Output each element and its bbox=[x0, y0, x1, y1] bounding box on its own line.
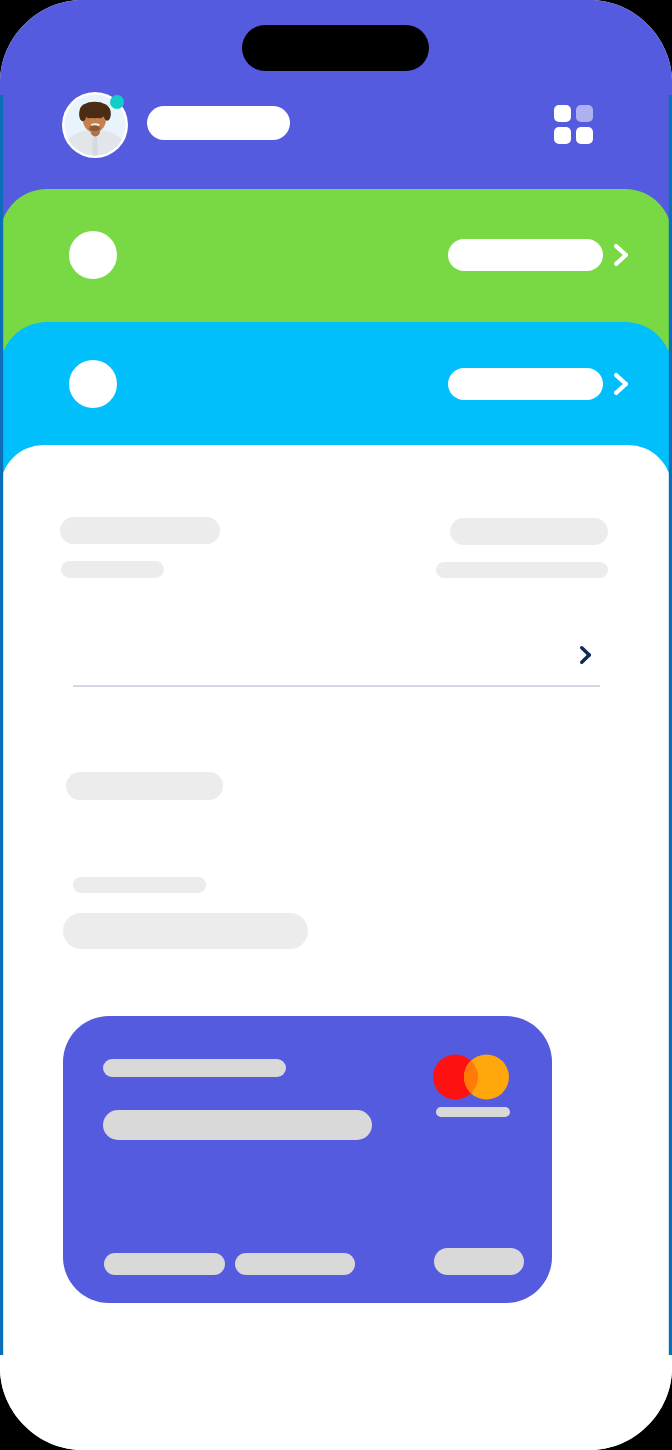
button[interactable]: Apps bbox=[545, 96, 601, 152]
button[interactable]: Profile bbox=[62, 92, 128, 158]
button[interactable] bbox=[0, 189, 672, 354]
button[interactable]: Section title bbox=[40, 755, 340, 830]
button[interactable]: Search bbox=[147, 106, 290, 140]
button[interactable]: Section content bbox=[40, 860, 340, 965]
button[interactable]: Mastercard payment card bbox=[63, 1016, 552, 1303]
button[interactable] bbox=[0, 322, 672, 478]
button[interactable]: Account summary bbox=[40, 495, 632, 685]
